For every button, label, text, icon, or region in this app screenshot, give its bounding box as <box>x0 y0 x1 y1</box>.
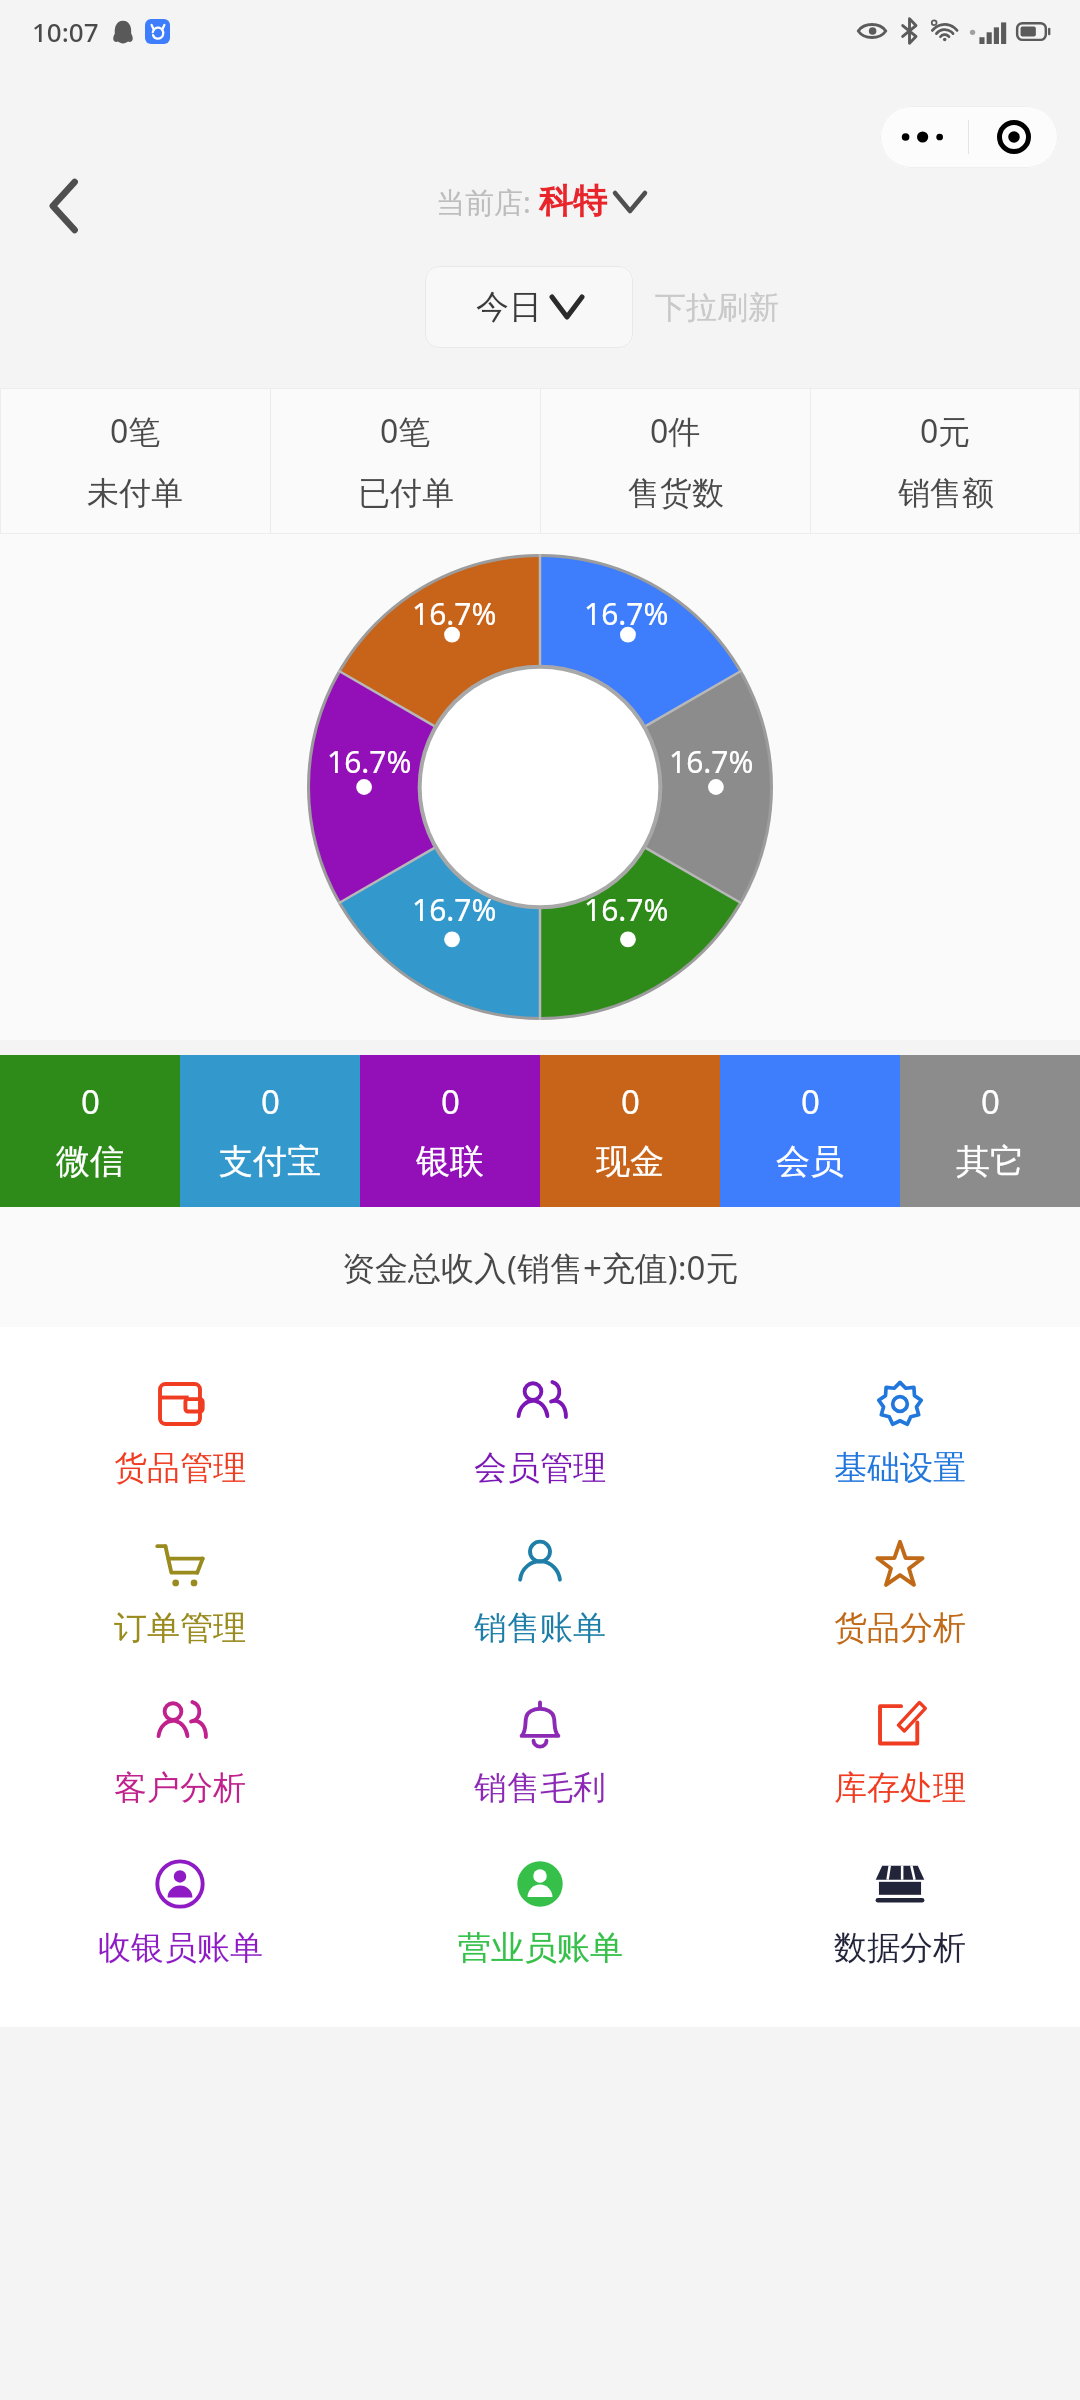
staticText: 收银员账单 <box>98 1927 263 1969</box>
staticText: 今日 <box>476 286 542 328</box>
button[interactable]: 0件 <box>541 388 810 534</box>
staticText: 货品管理 <box>114 1447 246 1489</box>
button[interactable]: 16.7% <box>584 593 669 634</box>
staticText: 数据分析 <box>834 1927 966 1969</box>
staticText: 售货数 <box>628 473 724 513</box>
button[interactable]: 库存处理 <box>720 1673 1080 1833</box>
staticText: 已付单 <box>358 473 454 513</box>
button[interactable]: 客户分析 <box>0 1673 360 1833</box>
button[interactable]: 数据分析 <box>720 1833 1080 1993</box>
button[interactable]: 0笔 <box>271 388 540 534</box>
staticText: 16.7% <box>327 741 412 782</box>
button[interactable]: 基础设置 <box>720 1353 1080 1513</box>
staticText: 销售账单 <box>474 1607 606 1649</box>
staticText: 销售毛利 <box>474 1767 606 1809</box>
staticText: 支付宝 <box>219 1140 321 1183</box>
button[interactable]: 订单管理 <box>0 1513 360 1673</box>
staticText: 未付单 <box>87 473 183 513</box>
staticText: 营业员账单 <box>458 1927 623 1969</box>
button[interactable]: 0 <box>0 1055 180 1207</box>
staticText: 0笔 <box>380 409 431 453</box>
staticText: 0元 <box>920 409 971 453</box>
staticText: 下拉刷新 <box>655 288 779 327</box>
button[interactable]: 0 <box>720 1055 900 1207</box>
button[interactable]: 0 <box>360 1055 540 1207</box>
button[interactable]: 0 <box>540 1055 720 1207</box>
staticText: 客户分析 <box>114 1767 246 1809</box>
staticText: 基础设置 <box>834 1447 966 1489</box>
staticText: 销售额 <box>898 473 994 513</box>
staticText: 货品分析 <box>834 1607 966 1649</box>
staticText: 订单管理 <box>114 1607 246 1649</box>
staticText: 0 <box>81 1079 100 1124</box>
button[interactable]: 16.7% <box>584 889 669 930</box>
staticText: 库存处理 <box>834 1767 966 1809</box>
staticText: 10:07 <box>32 14 99 49</box>
button[interactable]: 会员管理 <box>360 1353 720 1513</box>
staticText: 当前店: <box>436 182 539 222</box>
button[interactable]: 当前店: <box>436 180 645 223</box>
button[interactable]: 营业员账单 <box>360 1833 720 1993</box>
button[interactable]: 0笔 <box>0 388 270 534</box>
button[interactable]: 16.7% <box>412 593 497 634</box>
staticText: 16.7% <box>412 593 497 634</box>
staticText: 16.7% <box>584 889 669 930</box>
button[interactable]: 16.7% <box>412 889 497 930</box>
button[interactable]: 货品管理 <box>0 1353 360 1513</box>
staticText: 现金 <box>596 1140 664 1183</box>
staticText: 0 <box>441 1079 460 1124</box>
staticText: 0 <box>801 1079 820 1124</box>
staticText: 16.7% <box>669 741 754 782</box>
staticText: 0件 <box>650 409 701 453</box>
staticText: 0笔 <box>110 409 161 453</box>
staticText: 科特 <box>539 180 607 223</box>
staticText: 16.7% <box>412 889 497 930</box>
staticText: 会员 <box>776 1140 844 1183</box>
button[interactable]: Back <box>26 168 102 244</box>
staticText: 0 <box>981 1079 1000 1124</box>
staticText: 0 <box>261 1079 280 1124</box>
staticText: 16.7% <box>584 593 669 634</box>
staticText: 微信 <box>56 1140 124 1183</box>
button[interactable]: 销售毛利 <box>360 1673 720 1833</box>
staticText: 资金总收入(销售+充值):0元 <box>342 1245 739 1290</box>
button[interactable]: 货品分析 <box>720 1513 1080 1673</box>
button[interactable]: 0 <box>180 1055 360 1207</box>
button[interactable]: 销售账单 <box>360 1513 720 1673</box>
staticText: 会员管理 <box>474 1447 606 1489</box>
button[interactable]: 今日 <box>425 266 633 348</box>
button[interactable]: 0元 <box>811 388 1080 534</box>
staticText: 0 <box>621 1079 640 1124</box>
button[interactable]: 0 <box>900 1055 1080 1207</box>
button[interactable]: More options <box>880 106 968 168</box>
staticText: 其它 <box>956 1140 1024 1183</box>
button[interactable]: 收银员账单 <box>0 1833 360 1993</box>
button[interactable]: 16.7% <box>669 741 754 782</box>
staticText: 银联 <box>416 1140 484 1183</box>
button[interactable]: Close mini program <box>969 106 1058 168</box>
button[interactable]: 16.7% <box>327 741 412 782</box>
